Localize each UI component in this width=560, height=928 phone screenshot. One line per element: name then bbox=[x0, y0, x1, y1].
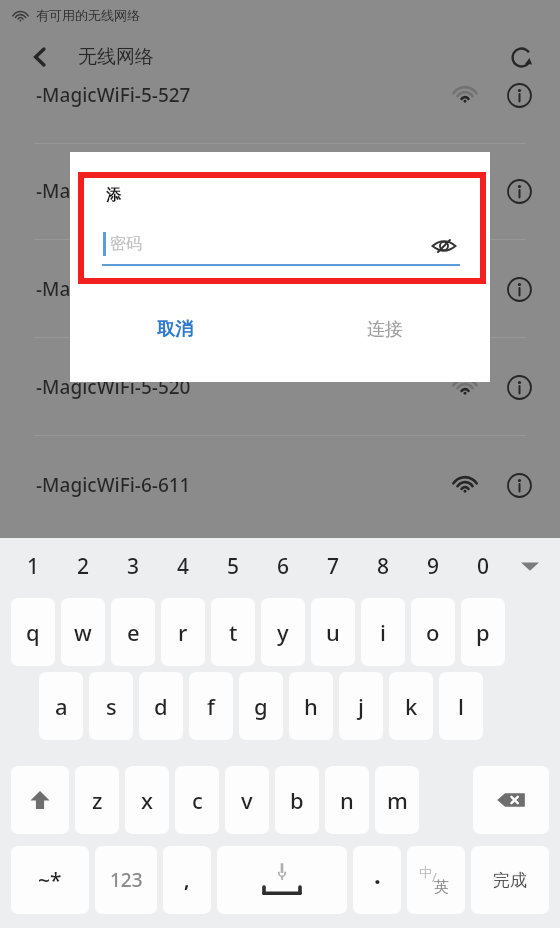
button[interactable]: a bbox=[39, 672, 83, 740]
staticText: 中 bbox=[419, 864, 432, 880]
button[interactable]: -MagicWiFi-5-520 bbox=[0, 339, 560, 435]
button[interactable]: 连接 bbox=[280, 300, 490, 358]
staticText: 8 bbox=[377, 552, 390, 581]
staticText: t bbox=[229, 617, 238, 647]
staticText: 3 bbox=[127, 552, 140, 581]
staticText: 123 bbox=[110, 867, 143, 893]
staticText: 0 bbox=[477, 552, 490, 581]
button[interactable]: q bbox=[11, 598, 55, 666]
button[interactable]: 6 bbox=[261, 546, 305, 586]
staticText: v bbox=[241, 785, 253, 815]
button[interactable]: Backspace bbox=[473, 766, 549, 834]
button[interactable]: Show password bbox=[428, 230, 460, 262]
button[interactable]: n bbox=[325, 766, 369, 834]
staticText: c bbox=[192, 785, 203, 815]
staticText: 完成 bbox=[493, 870, 527, 891]
staticText: k bbox=[405, 691, 418, 721]
button[interactable]: Network details bbox=[502, 370, 536, 404]
button[interactable]: r bbox=[161, 598, 205, 666]
button[interactable]: Space bbox=[217, 846, 347, 914]
staticText: i bbox=[380, 617, 386, 647]
button[interactable]: t bbox=[211, 598, 255, 666]
button[interactable]: Network details bbox=[502, 468, 536, 502]
button[interactable]: g bbox=[239, 672, 283, 740]
button[interactable]: ~* bbox=[11, 846, 89, 914]
button[interactable]: Network details bbox=[502, 174, 536, 208]
button[interactable]: 7 bbox=[311, 546, 355, 586]
staticText: w bbox=[74, 617, 92, 647]
button[interactable]: 2 bbox=[61, 546, 105, 586]
staticText: 添 bbox=[106, 186, 121, 205]
staticText: f bbox=[207, 691, 215, 721]
button[interactable]: f bbox=[189, 672, 233, 740]
staticText: q bbox=[26, 617, 40, 647]
button[interactable]: 8 bbox=[361, 546, 405, 586]
staticText: 连接 bbox=[367, 318, 403, 341]
button[interactable]: Refresh bbox=[500, 36, 542, 78]
button[interactable]: Back bbox=[20, 37, 60, 77]
staticText: g bbox=[254, 691, 268, 721]
button[interactable]: 取消 bbox=[70, 300, 280, 358]
button[interactable]: b bbox=[275, 766, 319, 834]
button[interactable]: z bbox=[75, 766, 119, 834]
button[interactable]: -MagicWiFi-5-502 bbox=[0, 241, 560, 337]
staticText: b bbox=[290, 785, 304, 815]
button[interactable]: s bbox=[89, 672, 133, 740]
staticText: · bbox=[374, 864, 381, 897]
staticText: 5 bbox=[227, 552, 240, 581]
button[interactable]: Network details bbox=[502, 272, 536, 306]
button[interactable]: d bbox=[139, 672, 183, 740]
staticText: 英 bbox=[434, 878, 449, 897]
staticText: -MagicWiFi-5-520 bbox=[36, 374, 191, 400]
staticText: y bbox=[277, 617, 289, 647]
button[interactable]: i bbox=[361, 598, 405, 666]
button[interactable]: v bbox=[225, 766, 269, 834]
staticText: 1 bbox=[27, 552, 40, 581]
staticText: 2 bbox=[77, 552, 90, 581]
button[interactable]: u bbox=[311, 598, 355, 666]
button[interactable]: w bbox=[61, 598, 105, 666]
button[interactable]: o bbox=[411, 598, 455, 666]
staticText: 9 bbox=[427, 552, 440, 581]
button[interactable]: 4 bbox=[161, 546, 205, 586]
button[interactable]: Hide keyboard bbox=[509, 546, 551, 586]
staticText: l bbox=[458, 691, 464, 721]
button[interactable]: -MagicWiFi-6-611 bbox=[0, 437, 560, 533]
staticText: u bbox=[326, 617, 340, 647]
staticText: z bbox=[92, 785, 103, 815]
button[interactable]: Network details bbox=[502, 78, 536, 112]
button[interactable]: 123 bbox=[95, 846, 157, 914]
button[interactable]: j bbox=[339, 672, 383, 740]
staticText: x bbox=[141, 785, 153, 815]
button[interactable]: 0 bbox=[461, 546, 505, 586]
staticText: d bbox=[154, 691, 168, 721]
staticText: 密码 bbox=[110, 234, 142, 254]
button[interactable]: y bbox=[261, 598, 305, 666]
button[interactable]: -MagicWiFi-5-518 bbox=[0, 143, 560, 239]
button[interactable]: Toggle Chinese English bbox=[407, 846, 465, 914]
button[interactable]: -MagicWiFi-5-527 bbox=[0, 47, 560, 143]
button[interactable]: 完成 bbox=[471, 846, 549, 914]
staticText: 7 bbox=[327, 552, 340, 581]
button[interactable]: 9 bbox=[411, 546, 455, 586]
button[interactable]: 5 bbox=[211, 546, 255, 586]
staticText: h bbox=[304, 691, 318, 721]
staticText: -MagicWiFi-6-611 bbox=[36, 472, 191, 498]
button[interactable]: Shift bbox=[11, 766, 69, 834]
button[interactable]: , bbox=[163, 846, 211, 914]
staticText: p bbox=[476, 617, 490, 647]
button[interactable]: p bbox=[461, 598, 505, 666]
button[interactable]: e bbox=[111, 598, 155, 666]
staticText: e bbox=[127, 617, 140, 647]
button[interactable]: l bbox=[439, 672, 483, 740]
button[interactable]: c bbox=[175, 766, 219, 834]
button[interactable]: 1 bbox=[11, 546, 55, 586]
button[interactable]: x bbox=[125, 766, 169, 834]
button[interactable]: m bbox=[375, 766, 419, 834]
staticText: m bbox=[387, 785, 408, 815]
staticText: o bbox=[426, 617, 440, 647]
button[interactable]: 3 bbox=[111, 546, 155, 586]
button[interactable]: · bbox=[353, 846, 401, 914]
button[interactable]: k bbox=[389, 672, 433, 740]
button[interactable]: h bbox=[289, 672, 333, 740]
